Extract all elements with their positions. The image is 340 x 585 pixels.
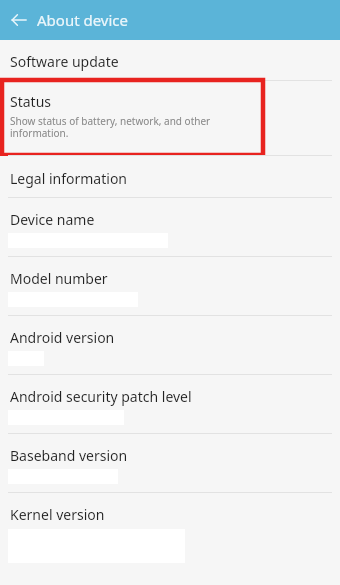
button[interactable]: Legal information [0,156,340,197]
staticText: Show status of battery, network, and oth… [10,114,211,140]
button[interactable]: Software update [0,40,340,80]
button[interactable]: Kernel version [0,493,340,563]
staticText: Device name [10,210,95,229]
button[interactable]: Back [5,6,33,34]
staticText: About device [37,10,129,30]
staticText: Baseband version [10,446,128,465]
button[interactable]: Model number [0,257,340,315]
button[interactable]: Device name [0,198,340,256]
button[interactable]: Baseband version [0,434,340,492]
staticText: Software update [10,52,119,71]
staticText: Android security patch level [10,387,192,406]
button[interactable]: Status [0,81,340,155]
staticText: Legal information [10,169,128,188]
staticText: Model number [10,269,108,288]
button[interactable]: Android version [0,316,340,374]
staticText: Kernel version [10,505,105,524]
button[interactable]: Android security patch level [0,375,340,433]
staticText: Android version [10,328,115,347]
staticText: Status [10,92,52,111]
